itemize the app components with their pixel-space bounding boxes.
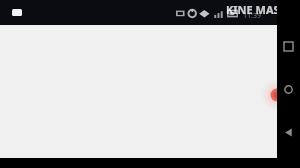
button[interactable] xyxy=(0,25,277,158)
button[interactable]: Home xyxy=(277,78,300,101)
staticText: KINE MASTER xyxy=(226,2,300,17)
button[interactable]: Recent apps xyxy=(277,35,300,58)
button[interactable]: Back xyxy=(277,121,300,144)
staticText: 11:39 xyxy=(243,11,261,21)
